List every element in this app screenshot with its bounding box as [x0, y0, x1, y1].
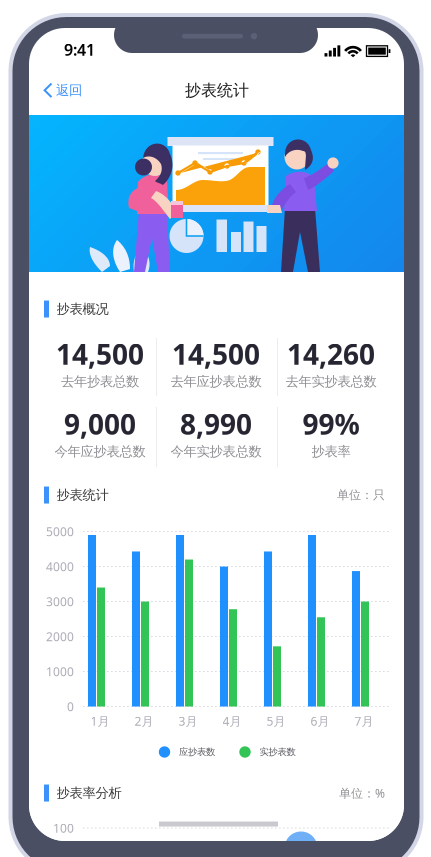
staticText: 1000	[46, 663, 74, 679]
staticText: 6月	[310, 713, 329, 729]
staticText: 4000	[46, 558, 74, 574]
staticText: 返回	[56, 82, 82, 98]
staticText: 去年抄表总数	[61, 373, 139, 390]
staticText: 100	[53, 820, 74, 836]
staticText: 抄表率	[311, 443, 350, 460]
staticText: 4月	[222, 713, 241, 729]
staticText: 1月	[90, 713, 109, 729]
staticText: 抄表率分析	[56, 785, 121, 801]
staticText: 2000	[46, 628, 74, 644]
staticText: 14,260	[287, 335, 375, 373]
staticText: 0	[67, 698, 74, 714]
staticText: 单位：%	[339, 785, 385, 801]
staticText: 5000	[46, 523, 74, 539]
button[interactable]: 返回	[42, 80, 100, 101]
staticText: 8,990	[180, 405, 252, 443]
staticText: 2月	[134, 713, 153, 729]
staticText: 14,500	[56, 335, 144, 373]
staticText: 9,000	[64, 405, 136, 443]
staticText: 抄表统计	[185, 81, 249, 100]
staticText: 今年应抄表总数	[54, 443, 145, 460]
staticText: 7月	[354, 713, 373, 729]
staticText: 抄表统计	[56, 487, 108, 503]
staticText: 14,500	[172, 335, 260, 373]
staticText: 5月	[266, 713, 285, 729]
staticText: 去年应抄表总数	[170, 373, 261, 390]
staticText: 去年实抄表总数	[285, 373, 376, 390]
staticText: 应抄表数	[179, 746, 215, 758]
staticText: 9:41	[64, 39, 95, 60]
staticText: 3月	[178, 713, 197, 729]
staticText: 实抄表数	[259, 746, 295, 758]
staticText: 抄表概况	[56, 301, 108, 317]
staticText: 今年实抄表总数	[170, 443, 261, 460]
staticText: 3000	[46, 593, 74, 609]
staticText: 99%	[302, 405, 359, 443]
staticText: 单位：只	[337, 488, 385, 502]
